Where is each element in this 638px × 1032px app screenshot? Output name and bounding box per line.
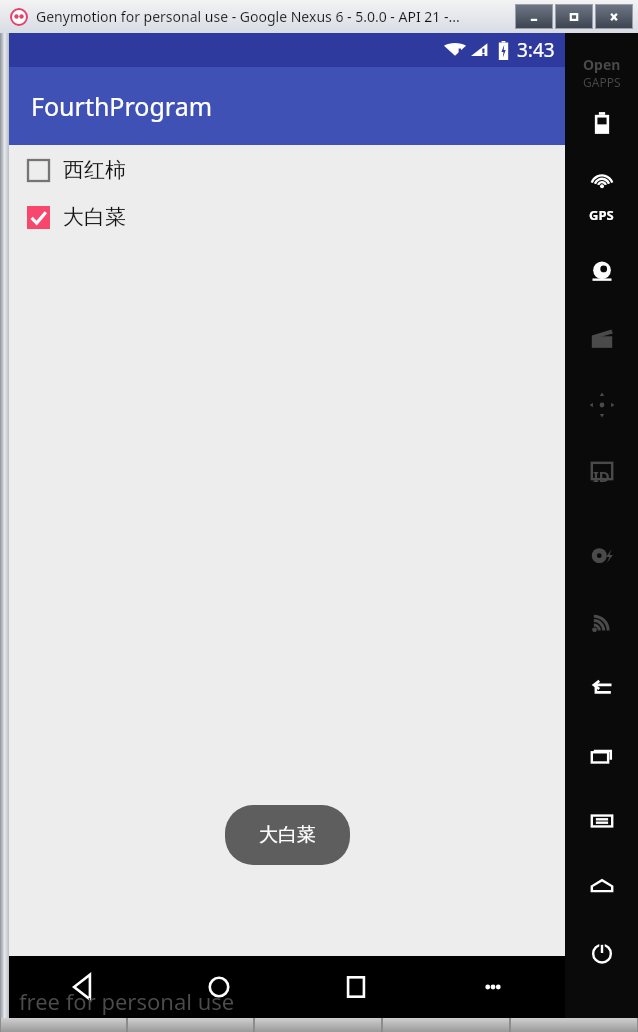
button[interactable]: Identifiers: [569, 438, 635, 504]
button[interactable]: GPS: [569, 156, 635, 222]
button[interactable]: Back: [569, 656, 635, 722]
button[interactable]: Home: [150, 956, 287, 1018]
button[interactable]: Recents: [287, 956, 424, 1018]
button[interactable]: Taskbar item 3: [255, 1018, 381, 1032]
staticText: ID: [593, 466, 610, 486]
staticText: FourthProgram: [31, 89, 213, 123]
staticText: Open: [583, 55, 621, 74]
button[interactable]: 西红柿: [27, 157, 565, 183]
button[interactable]: Recent apps: [569, 722, 635, 788]
button[interactable]: Navigation pad: [569, 372, 635, 438]
button[interactable]: Power: [569, 920, 635, 986]
button[interactable]: Taskbar item 4: [383, 1018, 509, 1032]
button[interactable]: Home: [569, 854, 635, 920]
staticText: GAPPS: [583, 74, 621, 90]
staticText: 3:43: [517, 37, 555, 63]
button[interactable]: More options: [424, 956, 561, 1018]
button[interactable]: Close: [595, 4, 633, 29]
staticText: 大白菜: [259, 823, 316, 847]
staticText: 西红柿: [63, 157, 126, 183]
staticText: Genymotion for personal use - Google Nex…: [36, 7, 460, 26]
button[interactable]: Network: [569, 590, 635, 656]
button[interactable]: Open GAPPS: [583, 55, 621, 90]
staticText: 大白菜: [63, 204, 126, 230]
button[interactable]: Maximize: [555, 4, 593, 29]
button[interactable]: Taskbar item 1: [1, 1018, 126, 1032]
button[interactable]: 大白菜: [27, 204, 565, 230]
button[interactable]: Taskbar item 5: [511, 1018, 637, 1032]
staticText: free for personal use: [19, 986, 235, 1016]
button[interactable]: Disk IO: [569, 524, 635, 590]
staticText: GPS: [589, 206, 614, 224]
button[interactable]: Menu: [569, 788, 635, 854]
button[interactable]: Taskbar item 2: [128, 1018, 253, 1032]
button[interactable]: Screen record: [569, 306, 635, 372]
button[interactable]: Back: [13, 956, 150, 1018]
button[interactable]: Camera: [569, 240, 635, 306]
button[interactable]: Minimize: [515, 4, 553, 29]
button[interactable]: Battery: [569, 90, 635, 156]
